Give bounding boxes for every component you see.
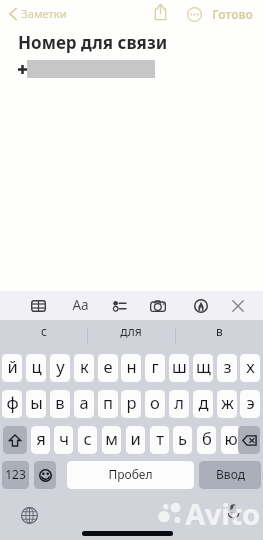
staticText: ц bbox=[31, 355, 42, 377]
staticText: и bbox=[130, 427, 141, 449]
staticText: в bbox=[216, 323, 223, 339]
staticText: т bbox=[156, 427, 164, 449]
button[interactable]: Готово bbox=[211, 4, 253, 23]
button[interactable]: Share bbox=[151, 3, 169, 21]
staticText: Заметки bbox=[21, 6, 67, 21]
button[interactable]: More options bbox=[185, 5, 203, 23]
staticText: с bbox=[41, 323, 47, 339]
staticText: ж bbox=[221, 391, 234, 413]
button[interactable]: ч bbox=[54, 426, 73, 454]
button[interactable]: Dictation bbox=[224, 503, 243, 522]
staticText: в bbox=[55, 391, 65, 413]
button[interactable]: е bbox=[98, 354, 118, 382]
staticText: ш bbox=[172, 355, 187, 377]
staticText: з bbox=[223, 355, 232, 377]
staticText: я bbox=[36, 427, 46, 449]
button[interactable]: ю bbox=[221, 426, 240, 454]
button[interactable]: Пробел bbox=[67, 461, 194, 489]
button[interactable]: т bbox=[150, 426, 169, 454]
button[interactable]: для bbox=[87, 320, 175, 344]
staticText: ь bbox=[178, 427, 187, 449]
button[interactable]: м bbox=[102, 426, 121, 454]
staticText: к bbox=[80, 355, 89, 377]
button[interactable]: Markup bbox=[190, 291, 212, 320]
staticText: й bbox=[7, 355, 18, 377]
staticText: Ввод bbox=[216, 466, 245, 482]
button[interactable]: д bbox=[193, 390, 213, 418]
staticText: ч bbox=[59, 427, 69, 449]
button[interactable]: б bbox=[197, 426, 216, 454]
button[interactable]: Close keyboard bbox=[227, 291, 249, 320]
staticText: Готово bbox=[212, 6, 253, 22]
staticText: для bbox=[120, 323, 142, 339]
button[interactable]: э bbox=[240, 390, 260, 418]
button[interactable]: Checklist bbox=[108, 291, 130, 320]
button[interactable]: г bbox=[145, 354, 165, 382]
button[interactable]: л bbox=[169, 390, 189, 418]
button[interactable]: ж bbox=[217, 390, 237, 418]
button[interactable]: ь bbox=[173, 426, 192, 454]
button[interactable]: х bbox=[240, 354, 260, 382]
staticText: н bbox=[126, 355, 137, 377]
staticText: б bbox=[202, 427, 212, 449]
button[interactable]: Insert table bbox=[27, 291, 49, 320]
staticText: о bbox=[150, 391, 160, 413]
staticText: Номер для связи bbox=[18, 31, 168, 54]
button[interactable]: п bbox=[98, 390, 118, 418]
staticText: х bbox=[246, 355, 255, 377]
button[interactable]: 123 bbox=[2, 461, 29, 489]
button[interactable]: о bbox=[145, 390, 165, 418]
staticText: Aa bbox=[72, 296, 89, 314]
staticText: м bbox=[105, 427, 118, 449]
staticText: д bbox=[198, 391, 209, 413]
button[interactable]: а bbox=[74, 390, 94, 418]
button[interactable]: р bbox=[121, 390, 141, 418]
button[interactable]: в bbox=[175, 320, 263, 344]
button[interactable]: Ввод bbox=[199, 461, 261, 489]
staticText: ю bbox=[224, 427, 238, 449]
staticText: у bbox=[56, 355, 65, 377]
staticText: Пробел bbox=[108, 466, 153, 482]
staticText: г bbox=[151, 355, 159, 377]
staticText: е bbox=[103, 355, 113, 377]
button[interactable]: ы bbox=[26, 390, 46, 418]
button[interactable]: щ bbox=[193, 354, 213, 382]
staticText: с bbox=[83, 427, 92, 449]
staticText: л bbox=[174, 391, 184, 413]
staticText: ы bbox=[30, 391, 43, 413]
staticText: а bbox=[79, 391, 89, 413]
staticText: э bbox=[246, 391, 255, 413]
button[interactable]: з bbox=[217, 354, 237, 382]
button[interactable]: с bbox=[0, 320, 87, 344]
button[interactable]: Next keyboard bbox=[19, 505, 39, 525]
staticText: Avito bbox=[185, 494, 260, 533]
button[interactable]: ц bbox=[26, 354, 46, 382]
staticText: 123 bbox=[5, 466, 26, 482]
staticText: п bbox=[103, 391, 113, 413]
staticText: щ bbox=[196, 355, 211, 377]
button[interactable]: Заметки bbox=[9, 3, 67, 24]
button[interactable]: й bbox=[2, 354, 22, 382]
staticText: р bbox=[126, 391, 137, 413]
button[interactable]: Camera bbox=[147, 291, 169, 320]
button[interactable]: я bbox=[31, 426, 50, 454]
button[interactable]: ф bbox=[2, 390, 22, 418]
button[interactable]: ш bbox=[169, 354, 189, 382]
button[interactable]: Emoji keyboard bbox=[34, 461, 56, 489]
button[interactable]: Text formatting bbox=[69, 291, 91, 320]
button[interactable]: в bbox=[50, 390, 70, 418]
staticText: ф bbox=[6, 391, 19, 413]
button[interactable]: с bbox=[78, 426, 97, 454]
button[interactable]: к bbox=[74, 354, 94, 382]
button[interactable]: и bbox=[126, 426, 145, 454]
button[interactable]: н bbox=[121, 354, 141, 382]
button[interactable]: Backspace bbox=[238, 426, 260, 454]
button[interactable]: Shift bbox=[3, 426, 27, 454]
button[interactable]: у bbox=[50, 354, 70, 382]
